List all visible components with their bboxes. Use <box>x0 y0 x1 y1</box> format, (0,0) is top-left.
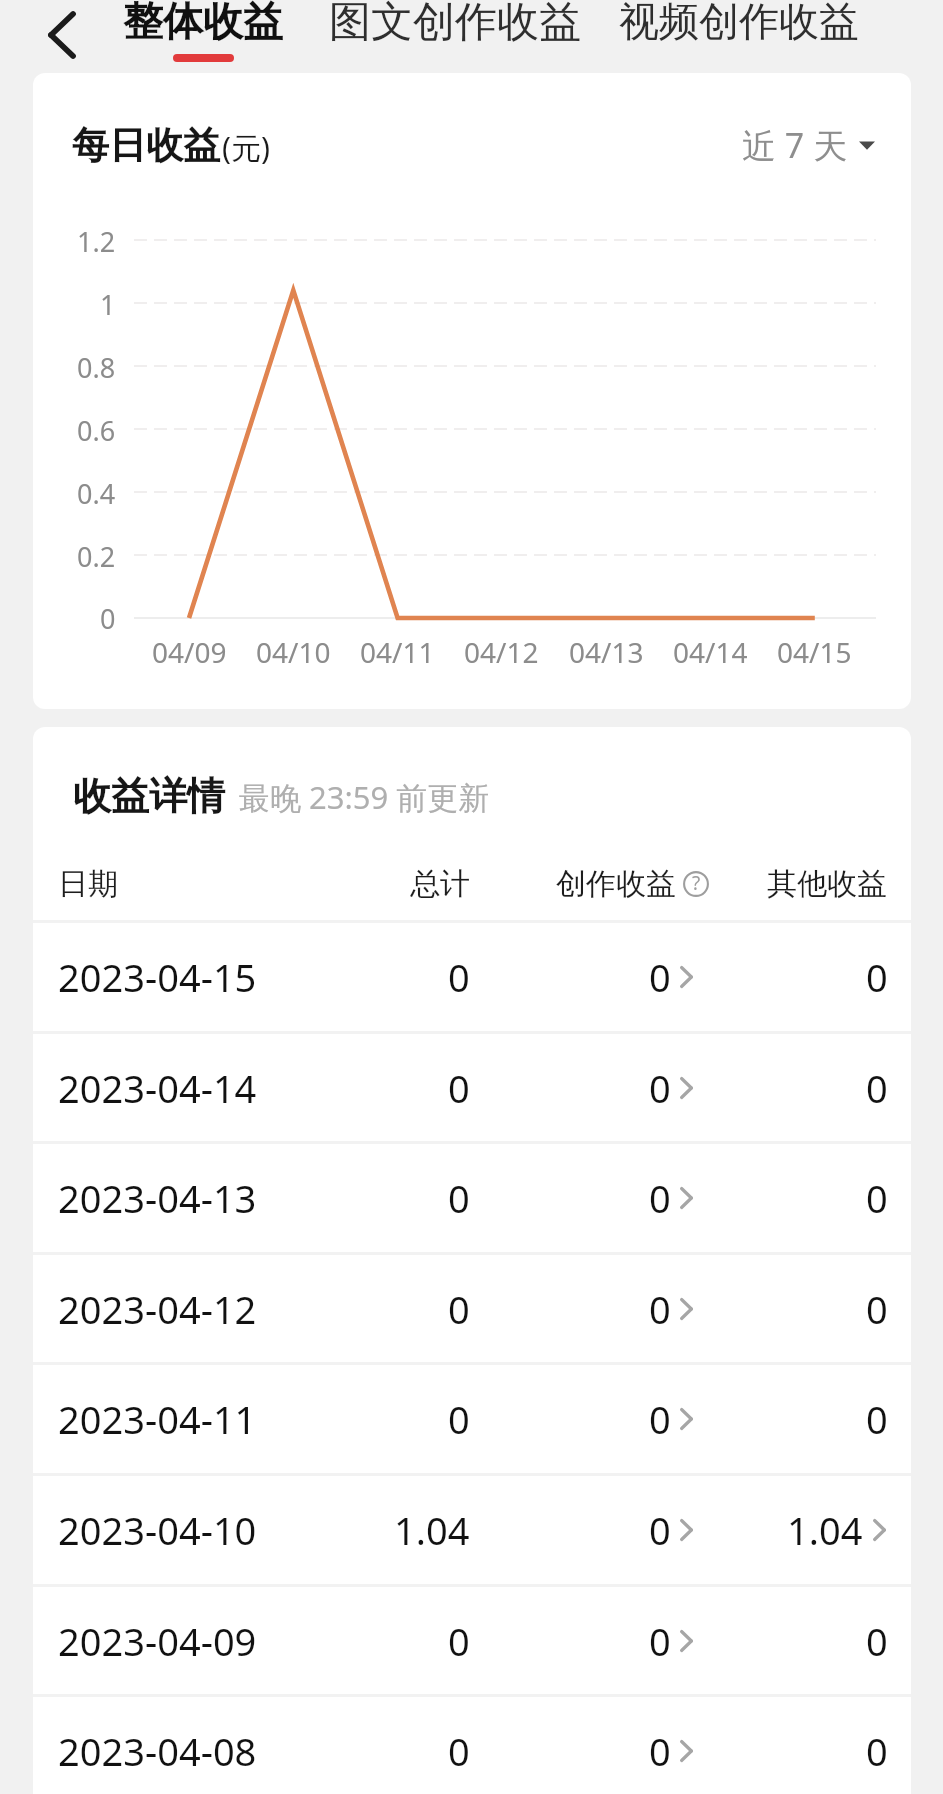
staticText: 0 <box>448 1615 470 1667</box>
button[interactable]: About creation earnings <box>683 871 709 897</box>
button[interactable]: 2023-04-08 <box>33 1697 911 1794</box>
staticText: 04/13 <box>569 633 644 671</box>
staticText: 创作收益 <box>556 865 676 903</box>
staticText: 04/15 <box>777 633 852 671</box>
button[interactable]: 0 <box>649 1365 693 1473</box>
staticText: 1.04 <box>394 1504 470 1556</box>
staticText: 0.8 <box>77 349 116 386</box>
staticText: 0 <box>649 1615 671 1667</box>
button[interactable]: 2023-04-13 <box>33 1144 911 1252</box>
staticText: 0 <box>866 1283 888 1335</box>
button[interactable]: 1.04 <box>787 1476 886 1584</box>
button[interactable]: 0 <box>649 1587 693 1695</box>
button[interactable]: 2023-04-12 <box>33 1255 911 1363</box>
button[interactable]: 0 <box>649 1034 693 1142</box>
staticText: (元) <box>222 127 270 168</box>
button[interactable]: 2023-04-11 <box>33 1365 911 1473</box>
staticText: 图文创作收益 <box>329 0 581 49</box>
staticText: 收益详情 <box>73 772 225 820</box>
staticText: 1.04 <box>787 1504 863 1556</box>
staticText: 0 <box>866 1615 888 1667</box>
button[interactable]: 0 <box>649 923 693 1031</box>
staticText: 2023-04-10 <box>58 1504 257 1556</box>
staticText: 0 <box>649 951 671 1003</box>
staticText: 0 <box>866 1393 888 1445</box>
staticText: 0 <box>448 1283 470 1335</box>
staticText: 0 <box>866 951 888 1003</box>
staticText: 2023-04-14 <box>58 1062 257 1114</box>
staticText: 0 <box>448 1062 470 1114</box>
staticText: 近 7 天 <box>742 122 848 168</box>
button[interactable]: 2023-04-15 <box>33 923 911 1031</box>
button[interactable]: 近 7 天 <box>742 122 875 169</box>
button[interactable]: 2023-04-09 <box>33 1587 911 1695</box>
button[interactable]: 图文创作收益 <box>305 0 605 73</box>
staticText: 2023-04-15 <box>58 951 257 1003</box>
staticText: 0 <box>649 1283 671 1335</box>
staticText: 04/12 <box>464 633 539 671</box>
staticText: 2023-04-13 <box>58 1172 257 1224</box>
staticText: 0 <box>866 1062 888 1114</box>
staticText: 04/10 <box>256 633 331 671</box>
button[interactable]: Back <box>0 0 124 73</box>
staticText: 0 <box>448 1725 470 1777</box>
button[interactable]: 2023-04-14 <box>33 1034 911 1142</box>
staticText: 04/09 <box>152 633 227 671</box>
staticText: 总计 <box>410 865 470 903</box>
staticText: 0 <box>448 1172 470 1224</box>
staticText: 2023-04-11 <box>58 1393 257 1445</box>
staticText: 0 <box>649 1504 671 1556</box>
button[interactable]: 整体收益 <box>53 0 353 73</box>
staticText: 视频创作收益 <box>619 0 859 46</box>
staticText: 04/14 <box>673 633 748 671</box>
staticText: 日期 <box>58 865 118 903</box>
staticText: 0 <box>649 1172 671 1224</box>
staticText: 每日收益 <box>72 122 220 169</box>
staticText: 0 <box>448 1393 470 1445</box>
staticText: 0 <box>100 600 116 637</box>
staticText: 1 <box>100 286 116 323</box>
staticText: 0.4 <box>77 475 116 512</box>
staticText: 2023-04-09 <box>58 1615 257 1667</box>
button[interactable]: 0 <box>649 1144 693 1252</box>
button[interactable]: 0 <box>649 1476 693 1584</box>
staticText: 其他收益 <box>767 865 887 903</box>
staticText: 0 <box>448 951 470 1003</box>
staticText: 0 <box>649 1062 671 1114</box>
button[interactable]: 0 <box>649 1255 693 1363</box>
staticText: 0 <box>866 1725 888 1777</box>
staticText: 最晚 23:59 前更新 <box>239 776 490 818</box>
staticText: 04/11 <box>360 633 435 671</box>
button[interactable]: 0 <box>649 1697 693 1794</box>
button[interactable]: 2023-04-10 <box>33 1476 911 1584</box>
staticText: 1.2 <box>77 223 116 260</box>
staticText: 2023-04-12 <box>58 1283 257 1335</box>
staticText: 0 <box>649 1393 671 1445</box>
staticText: 2023-04-08 <box>58 1725 257 1777</box>
staticText: 0 <box>866 1172 888 1224</box>
staticText: 0 <box>649 1725 671 1777</box>
staticText: ? <box>692 870 701 896</box>
staticText: 整体收益 <box>123 0 283 46</box>
button[interactable]: 视频创作收益 <box>589 0 889 73</box>
staticText: 0.6 <box>77 412 116 449</box>
staticText: 0.2 <box>77 538 116 575</box>
